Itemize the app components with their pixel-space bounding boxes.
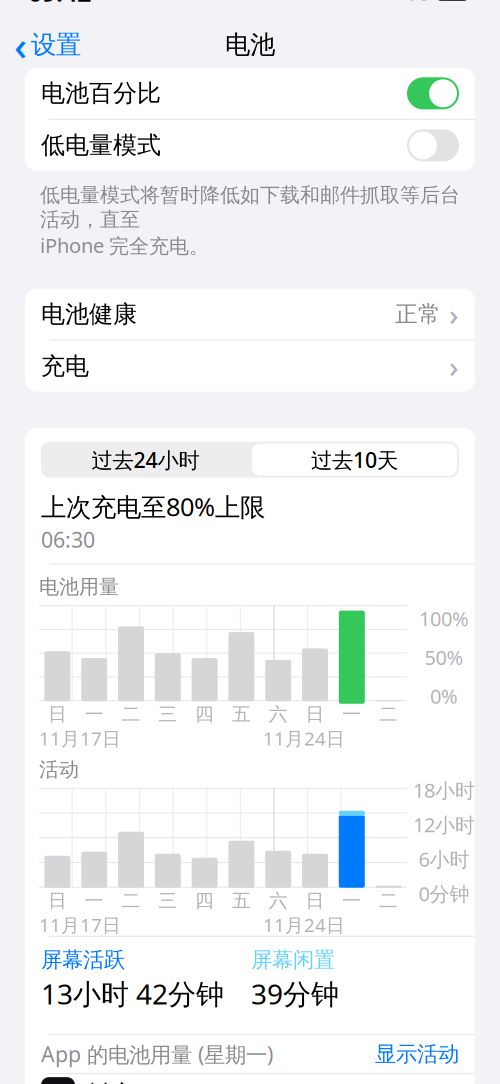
staticText: 抖音 [87,1079,135,1084]
staticText: 4G [403,0,431,6]
staticText: 屏幕闲置 [251,947,335,973]
staticText: 六 [269,703,288,726]
staticText: 06:30 [41,525,95,554]
staticText: 11月24日 [263,726,345,751]
staticText: 五 [232,703,251,726]
staticText: 六 [269,889,288,912]
staticText: 屏幕活跃 [41,947,125,973]
staticText: 11月24日 [263,912,345,937]
staticText: 设置 [31,29,81,60]
staticText: 电池百分比 [41,79,161,108]
button[interactable]: ‹ [0,14,81,75]
button[interactable]: 充电 [25,341,475,392]
staticText: 日 [305,703,324,726]
button[interactable]: 低电量模式 [25,120,475,171]
staticText: 电池健康 [41,299,137,329]
staticText: › [449,347,459,386]
staticText: 39分钟 [251,975,339,1012]
button[interactable]: 电池健康 [25,289,475,340]
staticText: 上次充电至80%上限 [41,490,265,523]
staticText: 100% [419,605,469,632]
staticText: 低电量模式将暂时降低如下载和邮件抓取等后台活动，直至 iPhone 完全充电。 [40,183,460,259]
staticText: 二 [121,703,140,726]
staticText: 过去10天 [311,445,398,474]
staticText: 一 [342,889,361,912]
staticText: 活动 [39,757,79,782]
staticText: 四 [195,889,214,912]
staticText: 显示活动 [375,1041,459,1067]
staticText: 日 [305,889,324,912]
staticText: 电池 [225,29,275,60]
staticText: 三 [158,703,177,726]
staticText: 二 [379,703,398,726]
staticText: 日 [48,703,67,726]
staticText: 0% [430,683,458,709]
button[interactable]: 过去24小时 [41,444,250,476]
button[interactable]: 电池百分比 [25,68,475,119]
staticText: 0分钟 [418,880,469,907]
staticText: 09:42 [28,0,91,9]
staticText: 12小时 [413,811,475,838]
staticText: 正常 [395,300,441,328]
staticText: 50% [424,644,463,670]
staticText: 充电 [41,351,89,381]
staticText: 电池用量 [39,575,119,599]
staticText: 过去24小时 [91,445,199,474]
staticText: 低电量模式 [41,131,161,160]
staticText: 五 [232,889,251,912]
button[interactable]: 显示活动 [375,1041,459,1067]
staticText: 79 [442,0,462,3]
staticText: 一 [342,703,361,726]
staticText: 二 [379,889,398,912]
staticText: 一 [85,703,104,726]
staticText: 三 [158,889,177,912]
staticText: 一 [85,889,104,912]
staticText: ‹ [14,18,27,71]
staticText: 11月17日 [39,912,121,937]
staticText: 6小时 [418,846,469,872]
staticText: 18小时 [413,777,475,803]
staticText: 二 [121,889,140,912]
staticText: 11月17日 [39,726,121,751]
staticText: 四 [195,703,214,726]
staticText: 日 [48,889,67,912]
staticText: 13小时 42分钟 [41,975,224,1012]
staticText: App 的电池用量 (星期一) [41,1040,273,1068]
button[interactable]: 过去10天 [252,444,457,476]
staticText: › [449,295,459,334]
